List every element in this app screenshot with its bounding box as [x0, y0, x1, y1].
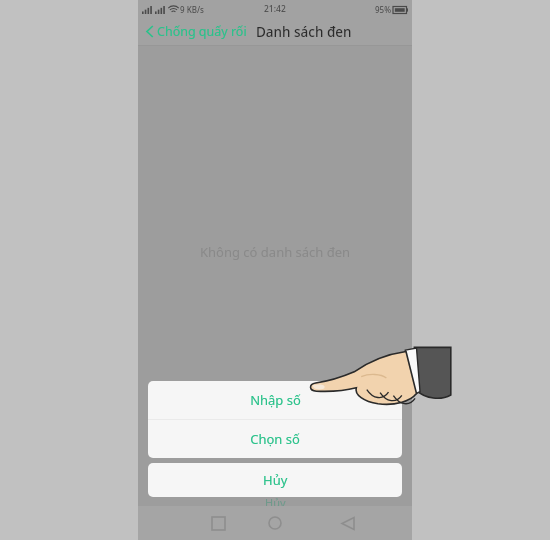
staticText: 9 KB/s [180, 4, 204, 15]
staticText: 95% [375, 4, 391, 15]
staticText: Nhập số [250, 391, 301, 409]
staticText: Hủy [263, 471, 288, 489]
button[interactable]: Hủy [148, 463, 402, 497]
button[interactable]: Nhập số [148, 381, 402, 419]
button[interactable]: Back [322, 506, 372, 540]
button[interactable]: Chống quấy rối [144, 21, 249, 42]
button[interactable]: Home [250, 506, 300, 540]
staticText: Chống quấy rối [157, 23, 247, 40]
staticText: Không có danh sách đen [200, 243, 351, 261]
button[interactable]: Chọn số [148, 420, 402, 458]
button[interactable]: Recents [193, 506, 243, 540]
staticText: Danh sách đen [256, 23, 352, 41]
staticText: Chọn số [250, 430, 300, 448]
staticText: Hủy [265, 495, 286, 510]
staticText: 21:42 [264, 3, 286, 15]
